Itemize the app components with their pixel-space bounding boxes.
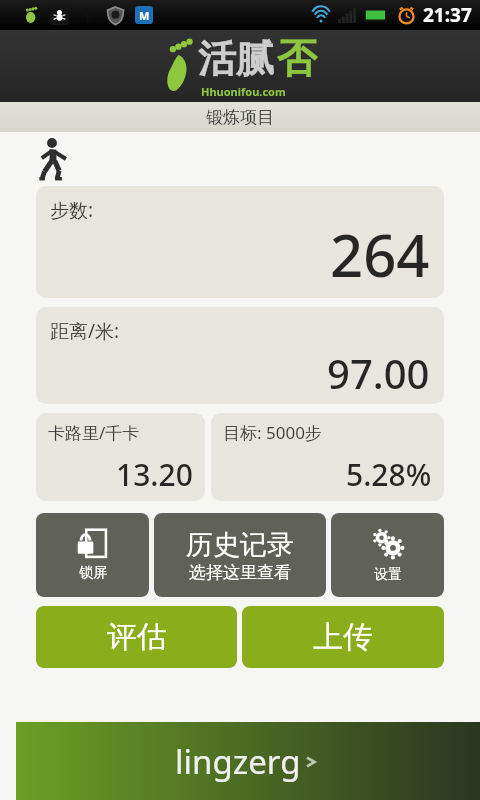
staticText: 步数:: [50, 197, 94, 223]
staticText: 13.20: [116, 454, 193, 495]
button[interactable]: 步数:: [36, 186, 444, 298]
button[interactable]: 评估: [36, 606, 237, 668]
staticText: 264: [330, 215, 430, 294]
staticText: 否: [277, 33, 317, 83]
staticText: 设置: [374, 566, 402, 584]
staticText: 评估: [107, 618, 167, 656]
staticText: 锻炼项目: [206, 107, 274, 128]
staticText: 5.28%: [346, 454, 432, 495]
staticText: 97.00: [327, 346, 430, 400]
button[interactable]: 上传: [242, 606, 444, 668]
button[interactable]: 锁屏: [36, 513, 149, 597]
staticText: 选择这里查看: [189, 562, 291, 583]
button[interactable]: 卡路里/千卡: [36, 413, 205, 501]
staticText: 距离/米:: [50, 318, 120, 344]
staticText: lingzerg: [175, 739, 301, 784]
button[interactable]: lingzerg: [16, 722, 480, 800]
staticText: 历史记录: [186, 528, 294, 562]
staticText: M: [139, 8, 150, 23]
button[interactable]: 距离/米:: [36, 307, 444, 404]
staticText: 卡路里/千卡: [48, 421, 140, 444]
staticText: 上传: [313, 618, 373, 656]
staticText: 活腻: [198, 35, 274, 83]
button[interactable]: 历史记录: [154, 513, 326, 597]
staticText: Hhuonifou.com: [201, 84, 286, 99]
staticText: 目标: 5000步: [223, 421, 322, 444]
staticText: 锁屏: [79, 564, 107, 582]
button[interactable]: 设置: [331, 513, 444, 597]
button[interactable]: 目标: 5000步: [211, 413, 444, 501]
staticText: 21:37: [423, 2, 472, 28]
